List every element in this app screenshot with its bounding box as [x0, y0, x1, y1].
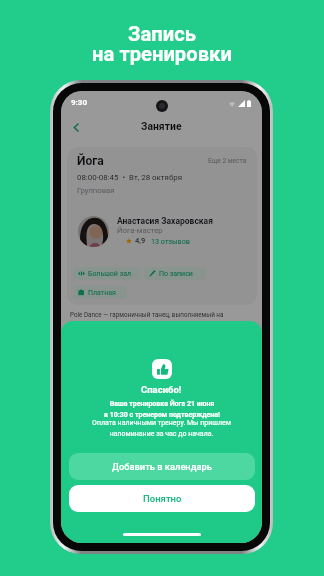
staticText: Групповая	[77, 186, 115, 195]
staticText: 4,9	[135, 236, 146, 245]
staticText: 9:30	[71, 98, 88, 107]
staticText: Большой зал	[88, 270, 132, 278]
button[interactable]: Back	[66, 117, 86, 137]
staticText: Pole Dance — гармоничный танец, выполняе…	[70, 311, 224, 318]
staticText: 13 отзывов	[151, 237, 190, 245]
staticText: По записи	[159, 270, 193, 278]
staticText: Еще 2 места	[208, 157, 247, 165]
staticText: Занятие	[141, 120, 182, 132]
staticText: Анастасия Захаровская	[117, 216, 213, 226]
staticText: Запись на тренировки	[0, 22, 324, 66]
staticText: Добавить в календарь	[112, 461, 212, 472]
staticText: Йога-мастер	[117, 226, 163, 235]
staticText: 08:00-08:45 • Вт, 28 октября	[77, 173, 182, 182]
button[interactable]: По записи	[144, 267, 206, 280]
staticText: Йога	[77, 154, 104, 168]
staticText: Оплата наличными тренеру. Мы пришлем нап…	[92, 419, 231, 438]
button[interactable]: Добавить в календарь	[69, 453, 255, 480]
button[interactable]: Платная	[73, 286, 127, 299]
staticText: Ваша тренировка Йога 21 июня в 10:30 с т…	[104, 400, 220, 419]
button[interactable]: Большой зал	[73, 267, 140, 280]
staticText: Платная	[88, 289, 116, 297]
button[interactable]: Понятно	[69, 485, 255, 512]
staticText: Спасибо!	[141, 384, 182, 395]
staticText: Понятно	[143, 493, 182, 504]
